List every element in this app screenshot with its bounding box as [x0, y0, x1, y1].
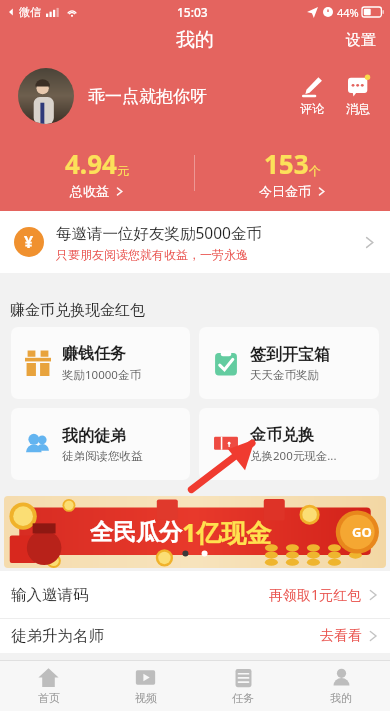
other: Comments: [302, 76, 323, 97]
staticText: 赚金币兑换现金红包: [10, 301, 145, 320]
button[interactable]: Profile photo: [18, 68, 74, 124]
button[interactable]: 4.94: [0, 146, 194, 199]
button[interactable]: 153: [195, 146, 390, 199]
staticText: ¥: [24, 231, 34, 253]
staticText: 赚钱任务: [62, 344, 126, 364]
staticText: 再领取1元红包: [269, 585, 362, 604]
staticText: 评论: [300, 101, 324, 116]
button[interactable]: 签到开宝箱: [199, 327, 379, 399]
staticText: 徒弟升为名师: [11, 626, 320, 646]
staticText: 天天金币奖励: [250, 368, 319, 382]
button[interactable]: 赚钱任务: [11, 327, 190, 399]
other: Video: [135, 667, 156, 688]
button[interactable]: Comments: [298, 76, 326, 116]
staticText: 153: [264, 146, 309, 181]
staticText: 金币兑换: [250, 425, 314, 445]
other: Home: [38, 667, 59, 688]
staticText: 元: [117, 163, 129, 178]
staticText: 我的: [330, 691, 352, 705]
staticText: 消息: [346, 101, 370, 116]
staticText: 只要朋友阅读您就有收益，一劳永逸: [56, 247, 248, 262]
staticText: 输入邀请码: [11, 585, 269, 605]
staticText: GO: [352, 523, 372, 541]
button[interactable]: Messages: [344, 76, 372, 116]
other: Tasks: [233, 667, 254, 688]
button[interactable]: Tasks: [194, 661, 292, 711]
staticText: 4.94: [65, 146, 117, 181]
button[interactable]: 全民瓜分: [4, 496, 386, 568]
staticText: 1亿现金: [182, 515, 272, 549]
button[interactable]: Home: [0, 661, 97, 711]
staticText: 奖励10000金币: [62, 367, 141, 383]
staticText: 微信: [19, 5, 41, 19]
staticText: 我的徒弟: [62, 426, 126, 446]
staticText: 个: [309, 163, 321, 178]
staticText: 兑换200元现金...: [250, 448, 337, 464]
button[interactable]: ¥: [0, 211, 390, 273]
button[interactable]: 徒弟升为名师: [0, 619, 390, 653]
staticText: 签到开宝箱: [250, 345, 330, 365]
staticText: 今日金币: [259, 183, 311, 199]
staticText: 徒弟阅读您收益: [62, 449, 143, 463]
staticText: 任务: [232, 691, 254, 705]
button[interactable]: Video: [97, 661, 194, 711]
staticText: 15:03: [177, 4, 208, 20]
staticText: 视频: [135, 691, 157, 705]
staticText: 总收益: [70, 183, 109, 199]
button[interactable]: Mine: [292, 661, 390, 711]
button[interactable]: 金币兑换: [199, 408, 379, 480]
staticText: 首页: [38, 691, 60, 705]
button[interactable]: 输入邀请码: [0, 571, 390, 618]
staticText: 44%: [337, 5, 359, 20]
button[interactable]: 我的徒弟: [11, 408, 190, 480]
button[interactable]: 乖一点就抱你呀: [88, 86, 298, 107]
staticText: 设置: [346, 31, 376, 50]
staticText: 我的: [176, 28, 214, 52]
other: Mine: [331, 667, 352, 688]
other: Messages: [348, 76, 369, 97]
staticText: 去看看: [320, 627, 362, 645]
button[interactable]: 设置: [332, 27, 390, 54]
staticText: 全民瓜分: [90, 518, 182, 547]
staticText: 每邀请一位好友奖励5000金币: [56, 222, 262, 243]
